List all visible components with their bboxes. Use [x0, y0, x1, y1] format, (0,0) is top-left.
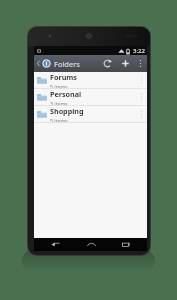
button[interactable]: Folders: [34, 55, 84, 72]
button[interactable]: Shopping: [34, 106, 147, 122]
button[interactable]: More options: [134, 55, 147, 72]
button[interactable]: Folder options for Personal: [137, 89, 145, 105]
button[interactable]: Folder options for Shopping: [137, 106, 145, 122]
staticText: Shopping: [50, 106, 84, 116]
staticText: Folders: [54, 59, 80, 69]
staticText: Forums: [50, 72, 77, 82]
button[interactable]: Recent apps: [112, 238, 140, 251]
staticText: Personal: [50, 89, 82, 99]
staticText: 5 items: [50, 117, 68, 122]
staticText: 3:22: [133, 47, 145, 55]
button[interactable]: Forums: [34, 72, 147, 88]
staticText: 5 items: [50, 83, 68, 88]
button[interactable]: Add folder: [116, 55, 134, 72]
staticText: 3 items: [50, 100, 68, 105]
button[interactable]: Personal: [34, 89, 147, 105]
button[interactable]: Refresh: [98, 55, 116, 72]
button[interactable]: Folder options for Forums: [137, 72, 145, 88]
button[interactable]: Back: [41, 238, 69, 251]
button[interactable]: Home: [77, 238, 105, 251]
